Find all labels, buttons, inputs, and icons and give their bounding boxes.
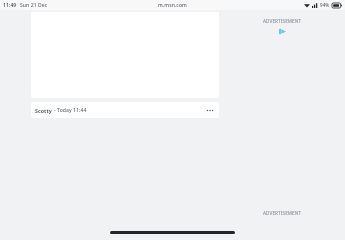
button[interactable]: Scotty [31, 102, 219, 118]
staticText: ADVERTISEMENT [263, 18, 302, 24]
staticText: Scotty [35, 107, 52, 114]
button[interactable]: More options [205, 105, 215, 115]
other: Wi-Fi [304, 3, 310, 8]
staticText: 11:49 [3, 2, 17, 9]
staticText: ADVERTISEMENT [263, 210, 302, 216]
button[interactable]: Advertisement [279, 28, 286, 35]
staticText: m.msn.com [158, 2, 187, 9]
staticText: 94% [320, 2, 330, 8]
staticText: - Today 11:44 [54, 107, 87, 114]
other: Battery [332, 3, 342, 8]
staticText: Sun 21 Dec [20, 2, 48, 9]
